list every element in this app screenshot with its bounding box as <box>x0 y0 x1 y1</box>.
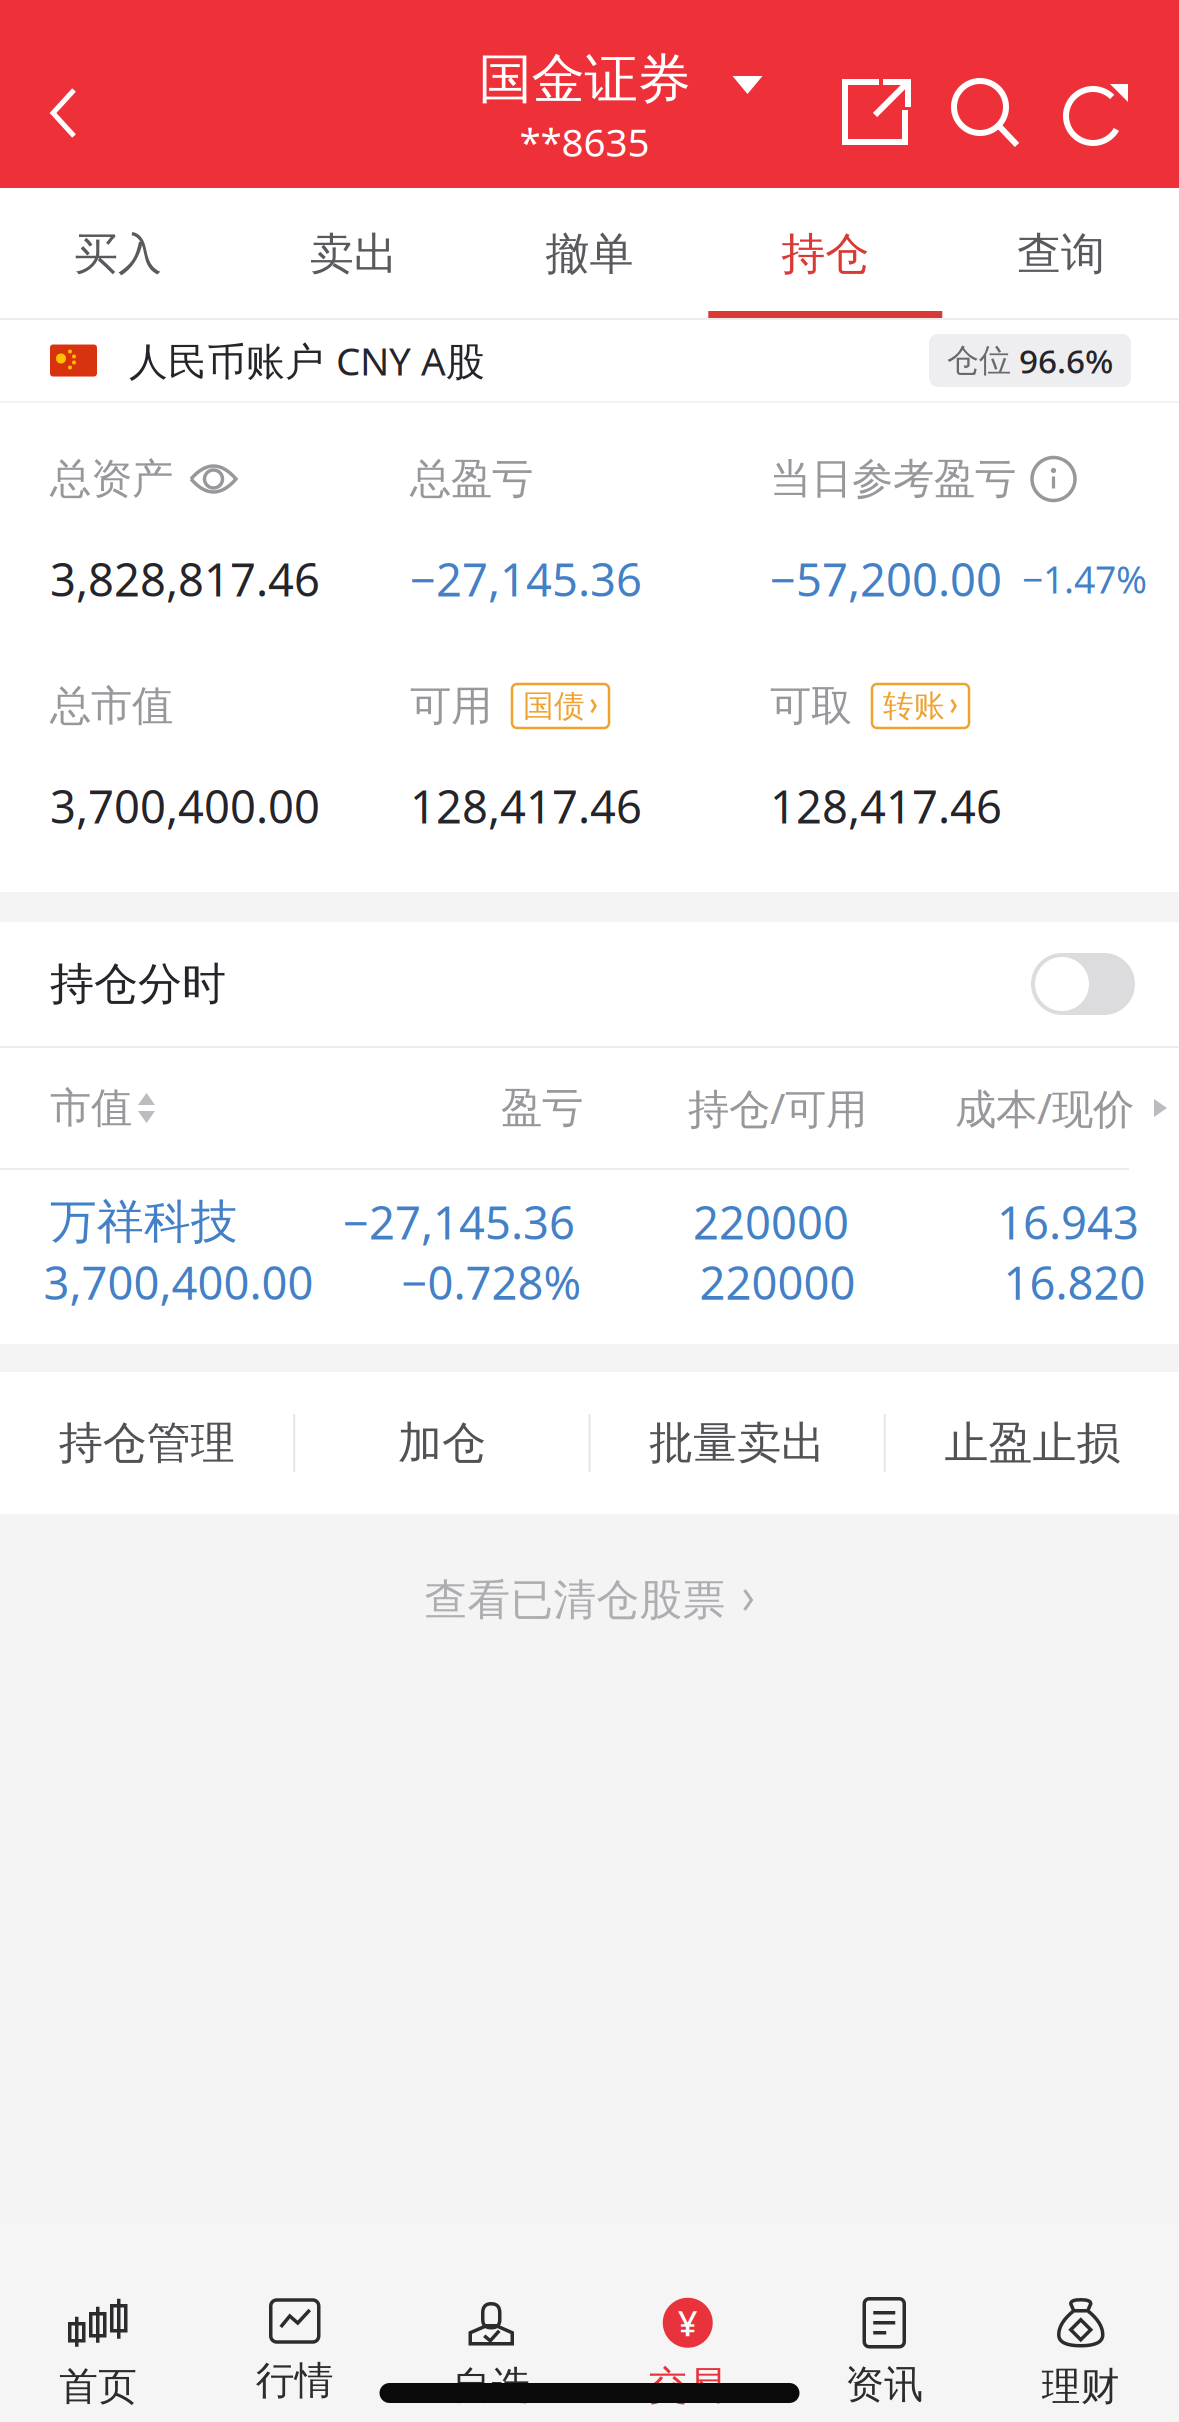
staticText: 卖出 <box>310 227 398 281</box>
button[interactable]: 自选 <box>393 2246 589 2416</box>
staticText: 3,828,817.46 <box>50 549 320 609</box>
staticText: 128,417.46 <box>770 776 1002 836</box>
button[interactable]: 国金证券 <box>294 42 884 172</box>
staticText: 万祥科技 <box>50 1193 238 1250</box>
button[interactable]: 加仓 <box>295 1372 588 1514</box>
button[interactable]: 理财 <box>982 2246 1179 2416</box>
staticText: 16.943 <box>997 1192 1139 1252</box>
button[interactable]: ¥ <box>589 2246 786 2416</box>
staticText: 交易 <box>649 2362 727 2409</box>
staticText: 查看已清仓股票 <box>424 1574 725 1626</box>
staticText: 可用 <box>410 681 492 731</box>
button[interactable]: 搜索 <box>947 74 1025 152</box>
button[interactable]: 止盈止损 <box>886 1372 1179 1514</box>
staticText: 持仓管理 <box>59 1416 235 1470</box>
button[interactable]: 持仓分时 <box>1031 953 1135 1015</box>
staticText: 16.820 <box>1003 1252 1145 1312</box>
button[interactable]: 返回 <box>0 48 128 178</box>
button[interactable]: 转账 <box>872 684 969 728</box>
staticText: 220000 <box>693 1192 849 1252</box>
staticText: 自选 <box>452 2362 530 2409</box>
button[interactable]: 撤单 <box>472 188 707 318</box>
staticText: 加仓 <box>398 1416 486 1470</box>
staticText: 当日参考盈亏 <box>770 454 1016 504</box>
button[interactable]: 持仓管理 <box>0 1372 293 1514</box>
staticText: 盈亏 <box>501 1083 583 1133</box>
staticText: 总盈亏 <box>410 454 533 504</box>
staticText: 行情 <box>256 2357 334 2404</box>
staticText: 持仓 <box>781 227 869 281</box>
staticText: ¥ <box>678 2300 698 2346</box>
staticText: 买入 <box>74 227 162 281</box>
staticText: −1.47% <box>1022 554 1147 604</box>
staticText: 国金证券 <box>478 47 690 112</box>
button[interactable]: 卖出 <box>236 188 472 318</box>
staticText: −0.728% <box>401 1252 581 1312</box>
staticText: 止盈止损 <box>944 1416 1120 1470</box>
staticText: 首页 <box>59 2363 137 2410</box>
button[interactable]: 资讯 <box>786 2246 982 2416</box>
button[interactable]: 买入 <box>0 188 236 318</box>
staticText: 96.6% <box>1019 338 1113 383</box>
button[interactable]: 刷新 <box>1057 73 1135 153</box>
staticText: 国债 <box>523 687 585 725</box>
button[interactable]: 万祥科技 <box>0 1170 1179 1344</box>
staticText: 查询 <box>1017 227 1105 281</box>
staticText: 持仓分时 <box>50 957 226 1011</box>
staticText: 3,700,400.00 <box>50 776 320 836</box>
staticText: −57,200.00 <box>770 549 1002 609</box>
staticText: 批量卖出 <box>649 1416 825 1470</box>
staticText: 转账 <box>883 687 945 725</box>
button[interactable]: 查看已清仓股票 <box>0 1514 1179 1686</box>
staticText: 成本/现价 <box>955 1081 1134 1135</box>
staticText: 持仓/可用 <box>688 1081 867 1135</box>
button[interactable]: 国债 <box>512 684 609 728</box>
staticText: **8635 <box>519 116 649 167</box>
staticText: 220000 <box>699 1252 855 1312</box>
staticText: 可取 <box>770 681 852 731</box>
button[interactable]: 分享 <box>837 74 915 152</box>
staticText: −27,145.36 <box>410 549 642 609</box>
staticText: 总资产 <box>50 454 173 504</box>
button[interactable]: 行情 <box>196 2246 393 2416</box>
staticText: 人民币账户 CNY A股 <box>129 335 485 386</box>
button[interactable]: 查询 <box>943 188 1179 318</box>
staticText: 3,700,400.00 <box>43 1252 313 1312</box>
staticText: −27,145.36 <box>343 1192 575 1252</box>
button[interactable]: 批量卖出 <box>590 1372 884 1514</box>
staticText: 128,417.46 <box>410 776 642 836</box>
button[interactable]: 首页 <box>0 2246 196 2416</box>
button[interactable]: 持仓 <box>707 188 943 318</box>
staticText: 理财 <box>1042 2363 1120 2410</box>
staticText: 市值 <box>50 1083 132 1133</box>
staticText: 资讯 <box>845 2361 923 2408</box>
staticText: 撤单 <box>545 227 633 281</box>
staticText: 总市值 <box>50 681 173 731</box>
staticText: 仓位 <box>947 341 1011 380</box>
